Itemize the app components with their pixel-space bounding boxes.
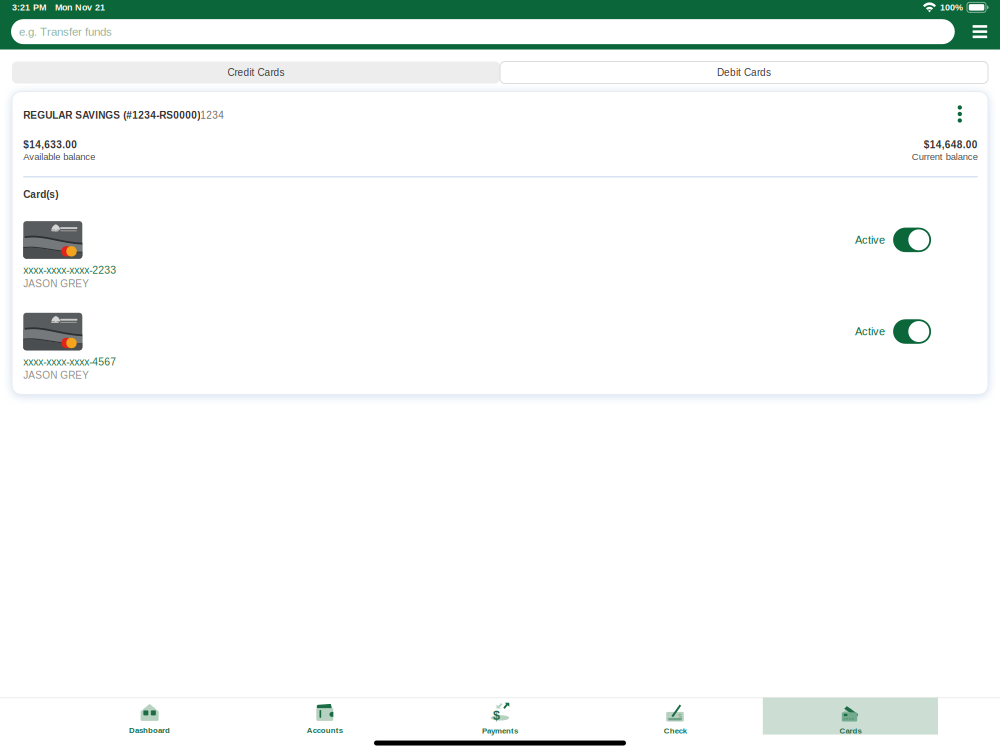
staticText: 1234 [200,110,224,121]
staticText: $14,633.00 [23,139,77,150]
button[interactable]: Dashboard [62,698,237,735]
staticText: REGULAR SAVINGS (#1234-RS0000) [23,110,200,121]
staticText: Current balance [912,151,978,162]
button[interactable]: $ [588,698,763,735]
button[interactable]: Active [855,228,931,252]
staticText: Check [664,726,687,735]
staticText: Cards [839,726,861,735]
staticText: $ [678,713,682,720]
staticText: e.g. Transfer funds [19,25,112,38]
staticText: $ [493,708,500,722]
button[interactable]: Menu [968,19,992,44]
staticText: Available balance [23,151,95,162]
staticText: Dashboard [129,726,170,735]
staticText: Debit Cards [717,67,771,78]
button[interactable]: Cards [763,698,938,735]
staticText: Mon Nov 21 [55,2,105,12]
button[interactable]: Active [855,319,931,344]
button[interactable]: Account options [949,89,971,124]
staticText: JASON GREY [23,278,89,289]
staticText: Active [855,234,885,246]
staticText: 3:21 PM [12,2,46,12]
button[interactable]: Credit Cards [12,61,500,83]
staticText: $14,648.00 [924,139,978,150]
staticText: xxxx-xxxx-xxxx-4567 [23,356,116,368]
button[interactable]: Debit Cards [500,61,988,83]
button[interactable]: Accounts [237,698,412,735]
staticText: Payments [482,726,518,735]
staticText: xxxx-xxxx-xxxx-2233 [23,264,116,276]
button[interactable]: e.g. Transfer funds [11,19,955,44]
staticText: Active [855,325,885,338]
staticText: Accounts [307,726,343,735]
staticText: 100% [940,2,963,12]
staticText: JASON GREY [23,370,89,381]
staticText: Credit Cards [227,67,284,78]
button[interactable]: $ [412,698,588,735]
staticText: Card(s) [23,189,58,200]
